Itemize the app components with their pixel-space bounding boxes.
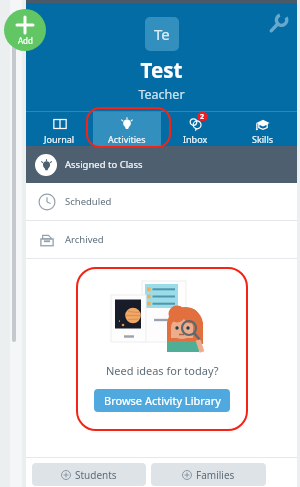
staticText: Skills <box>252 133 274 145</box>
staticText: Add <box>18 35 33 46</box>
staticText: Browse Activity Library <box>104 393 221 408</box>
button[interactable]: Add <box>4 9 46 51</box>
button[interactable]: Skills <box>229 112 297 146</box>
button[interactable]: Settings <box>268 14 288 34</box>
staticText: Test <box>26 56 297 84</box>
button[interactable]: Journal <box>26 112 93 146</box>
button[interactable]: 2 <box>161 112 229 146</box>
button[interactable]: Activities <box>93 112 161 146</box>
button[interactable]: Assigned to Class <box>26 146 297 183</box>
staticText: Teacher <box>26 86 297 103</box>
staticText: Scheduled <box>65 195 112 208</box>
button[interactable]: Browse Activity Library <box>94 389 230 412</box>
button[interactable]: Scheduled <box>26 183 297 220</box>
staticText: Activities <box>108 133 146 145</box>
staticText: Assigned to Class <box>65 158 143 171</box>
staticText: Families <box>196 468 235 482</box>
button[interactable]: Archived <box>26 221 297 258</box>
staticText: Need ideas for today? <box>106 363 219 378</box>
staticText: Te <box>154 24 170 44</box>
button[interactable]: Families <box>151 463 266 486</box>
staticText: Journal <box>44 133 75 145</box>
staticText: Students <box>75 468 117 482</box>
staticText: 2 <box>200 112 205 121</box>
staticText: Archived <box>65 233 104 246</box>
staticText: Inbox <box>183 133 208 145</box>
button[interactable]: Students <box>32 463 146 486</box>
